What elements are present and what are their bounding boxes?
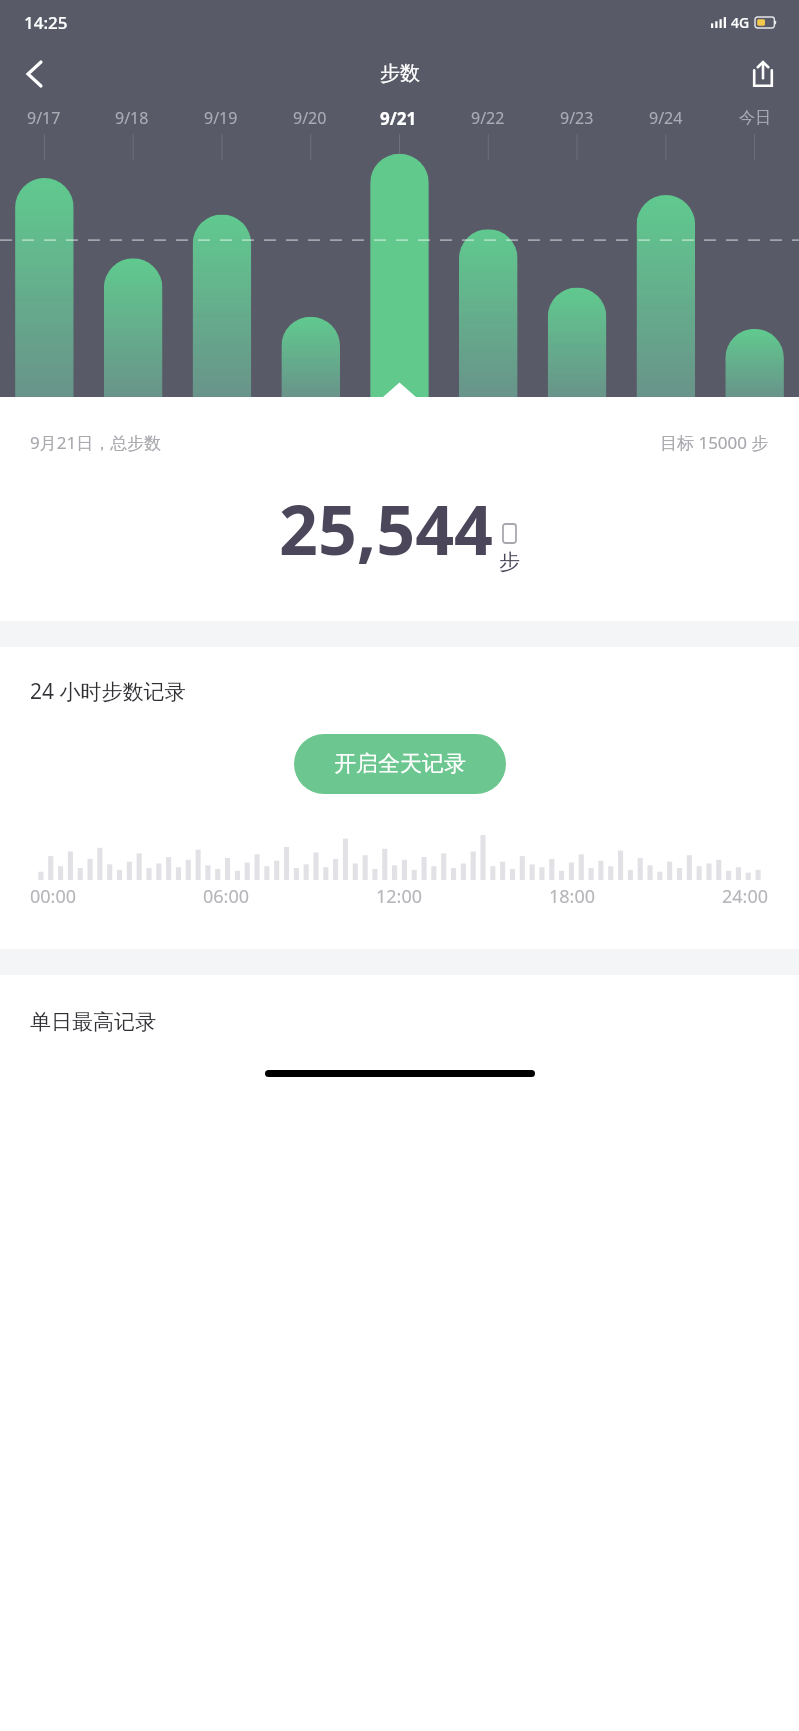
staticText: 18:00 [549, 884, 596, 909]
staticText: 目标 15000 步 [660, 431, 769, 454]
button[interactable]: 9/22 [443, 102, 532, 134]
staticText: 12:00 [376, 884, 423, 909]
staticText: 14:25 [24, 11, 68, 34]
staticText: 今日 [739, 108, 771, 128]
button[interactable]: 9/18 [88, 102, 176, 134]
button[interactable]: 开启全天记录 [294, 734, 506, 794]
button[interactable]: 9/24 [621, 102, 710, 134]
staticText: 9/18 [115, 107, 149, 129]
staticText: 00:00 [30, 884, 77, 909]
button[interactable]: 今日 [710, 102, 799, 134]
staticText: 9/21 [380, 107, 417, 130]
button[interactable]: Share [737, 48, 789, 100]
button[interactable]: 9/17 [0, 102, 88, 134]
staticText: 9/17 [27, 107, 61, 129]
staticText: 4G [731, 13, 750, 32]
staticText: 24 小时步数记录 [30, 677, 186, 706]
staticText: 25,544 [279, 482, 493, 575]
staticText: 9/19 [204, 107, 238, 129]
staticText: 06:00 [203, 884, 250, 909]
staticText: 24:00 [722, 884, 769, 909]
button[interactable]: 9/20 [265, 102, 354, 134]
staticText: 9/24 [649, 107, 683, 129]
button[interactable]: 9/23 [532, 102, 621, 134]
staticText: 9/22 [471, 107, 505, 129]
button[interactable]: 9/19 [176, 102, 265, 134]
button[interactable]: Back [8, 48, 60, 100]
staticText: 步 [499, 549, 520, 575]
staticText: 单日最高记录 [30, 1009, 156, 1035]
staticText: 9/20 [293, 107, 327, 129]
staticText: 9月21日，总步数 [30, 431, 162, 454]
staticText: 9/23 [560, 107, 594, 129]
staticText: 步数 [380, 61, 420, 86]
button[interactable]: 9/21 [354, 102, 443, 134]
staticText: 开启全天记录 [334, 750, 466, 778]
